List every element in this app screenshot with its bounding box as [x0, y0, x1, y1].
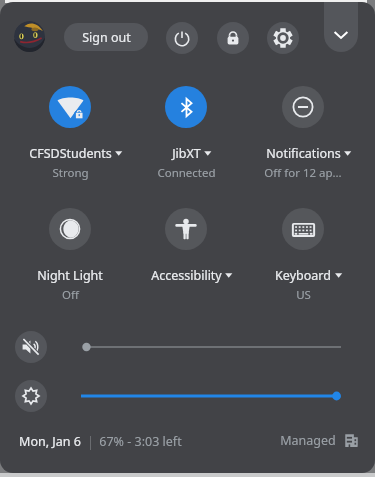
button[interactable]: Night Light: [8, 266, 132, 284]
staticText: Accessibility: [151, 267, 222, 284]
button[interactable]: Brightness slider: [72, 382, 354, 410]
staticText: Off: [62, 287, 79, 303]
button[interactable]: Accessibility: [124, 266, 248, 284]
button[interactable]: JibXT: [124, 144, 248, 162]
button[interactable]: Keyboard: [241, 266, 365, 284]
button[interactable]: Notifications: [241, 144, 365, 162]
button[interactable]: Settings: [267, 22, 299, 54]
button[interactable]: Managed: [280, 432, 358, 449]
staticText: 67% - 3:03 left: [99, 433, 182, 450]
staticText: Sign out: [82, 29, 131, 46]
button[interactable]: Volume slider: [72, 333, 354, 361]
button[interactable]: Volume: [15, 331, 47, 363]
staticText: Keyboard: [275, 267, 331, 284]
button[interactable]: JibXT: [165, 86, 207, 128]
staticText: Notifications: [266, 145, 341, 162]
staticText: Off for 12 ap…: [264, 165, 342, 181]
staticText: Strong: [52, 165, 89, 181]
staticText: CFSDStudents: [29, 145, 112, 162]
staticText: Mon, Jan 6: [19, 433, 81, 450]
button[interactable]: CFSDStudents: [49, 86, 91, 128]
button[interactable]: CFSDStudents: [8, 144, 132, 162]
button[interactable]: Lock: [217, 22, 249, 54]
button[interactable]: Night Light: [49, 208, 91, 250]
button[interactable]: Sign out: [64, 23, 148, 51]
button[interactable]: Keyboard: [282, 208, 324, 250]
staticText: Night Light: [37, 267, 103, 284]
staticText: Managed: [280, 432, 336, 449]
button[interactable]: Accessibility: [165, 208, 207, 250]
button[interactable]: 67% - 3:03 left: [99, 433, 182, 450]
button[interactable]: Notifications: [282, 86, 324, 128]
staticText: US: [296, 287, 311, 303]
button[interactable]: Brightness: [15, 380, 47, 412]
button[interactable]: Mon, Jan 6: [19, 433, 81, 450]
staticText: JibXT: [172, 145, 201, 162]
staticText: Connected: [157, 165, 216, 181]
button[interactable]: Collapse quick settings: [324, 2, 358, 52]
button[interactable]: Power: [166, 22, 198, 54]
button[interactable]: Account: [14, 21, 45, 52]
